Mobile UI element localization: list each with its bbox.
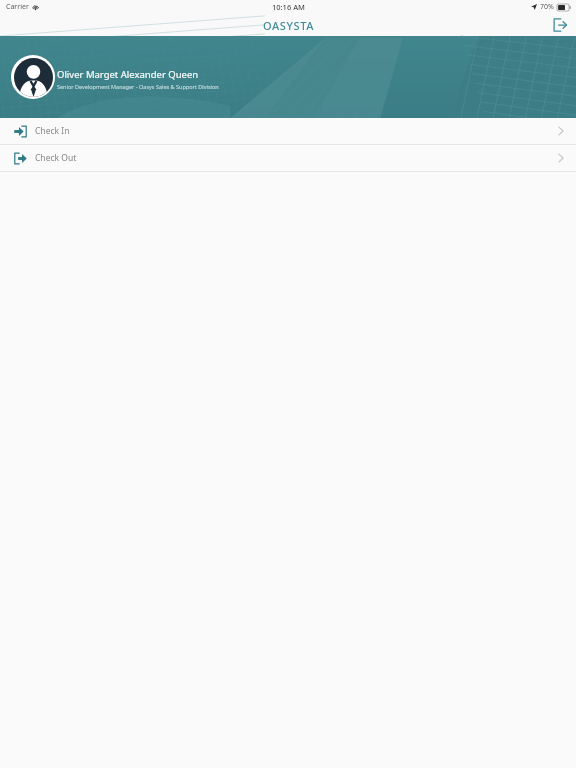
- button[interactable]: Check In: [0, 118, 576, 144]
- staticText: 70%: [540, 2, 554, 12]
- staticText: Check Out: [35, 152, 77, 164]
- staticText: 10:16 AM: [272, 2, 305, 12]
- button[interactable]: Profile photo: [11, 55, 55, 99]
- staticText: Oliver Marget Alexander Queen: [57, 68, 199, 81]
- staticText: Senior Development Manager - Oasys Sales…: [57, 83, 219, 90]
- staticText: OASYSTA: [263, 18, 314, 33]
- staticText: Check In: [35, 125, 70, 137]
- button[interactable]: Expand: [274, 138, 302, 166]
- button[interactable]: Log out: [550, 15, 570, 35]
- staticText: Carrier: [6, 2, 29, 12]
- button[interactable]: Check Out: [0, 145, 576, 171]
